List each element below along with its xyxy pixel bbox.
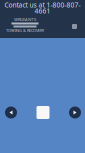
staticText: Contact us at 1-800-807- — [4, 1, 80, 9]
staticText: TOWING & RECOVERY — [6, 28, 44, 33]
button[interactable]: Menu — [72, 17, 85, 29]
button[interactable]: Next — [69, 106, 81, 118]
staticText: SERGEANT'S — [14, 17, 36, 22]
staticText: 4661 — [34, 7, 50, 15]
button[interactable]: Previous — [5, 106, 17, 118]
